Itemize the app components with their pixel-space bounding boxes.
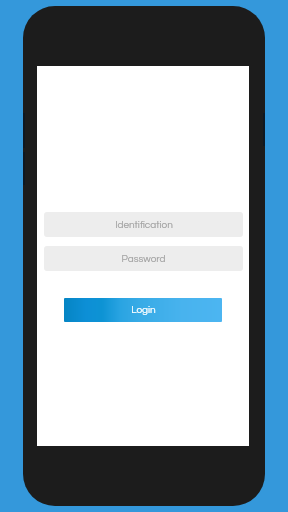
staticText: Login [131,305,156,315]
button[interactable]: Password [44,246,243,271]
button[interactable]: Identification [44,212,243,237]
staticText: Identification [115,220,173,230]
button[interactable]: Login [64,298,222,322]
staticText: Password [121,254,166,264]
